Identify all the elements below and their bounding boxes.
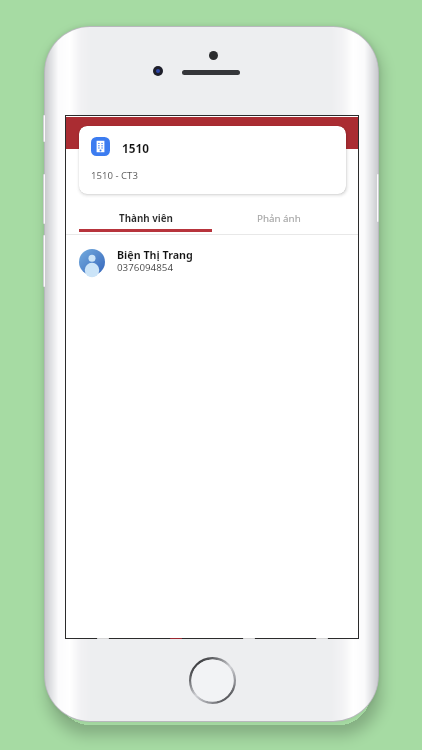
staticText: 1510 - CT3 — [91, 169, 138, 182]
button[interactable]: Biện Thị Trang — [66, 240, 358, 284]
button[interactable]: Thành viên — [79, 207, 212, 229]
staticText: Biện Thị Trang — [117, 248, 193, 263]
staticText: Thành viên — [119, 212, 173, 225]
button[interactable]: 1510 — [79, 126, 346, 194]
button[interactable]: Phản ánh — [212, 207, 345, 229]
staticText: 0376094854 — [117, 261, 174, 274]
staticText: 1510 — [122, 140, 149, 156]
staticText: Phản ánh — [257, 212, 301, 225]
